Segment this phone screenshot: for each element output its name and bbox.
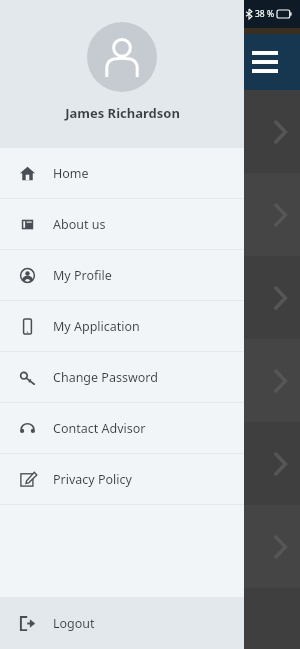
button[interactable]: Contact Advisor <box>0 403 244 453</box>
button[interactable]: My Application <box>0 301 244 351</box>
staticText: Home <box>53 165 89 182</box>
staticText: Contact Advisor <box>53 420 146 437</box>
button[interactable] <box>0 90 300 173</box>
staticText: Privacy Policy <box>53 471 132 488</box>
button[interactable]: About us <box>0 199 244 249</box>
button[interactable]: My Profile <box>0 250 244 300</box>
button[interactable]: Open navigation menu <box>252 51 278 73</box>
button[interactable]: Logout <box>0 598 244 649</box>
button[interactable]: Change Password <box>0 352 244 402</box>
staticText: James Richardson <box>65 104 180 122</box>
button[interactable] <box>0 173 300 256</box>
staticText: Logout <box>53 615 95 632</box>
staticText: My Profile <box>53 267 112 284</box>
button[interactable]: Privacy Policy <box>0 454 244 504</box>
staticText: 38 % <box>255 8 274 20</box>
button[interactable]: Home <box>0 148 244 198</box>
button[interactable] <box>0 422 300 505</box>
staticText: About us <box>53 216 106 233</box>
button[interactable] <box>0 505 300 588</box>
button[interactable] <box>0 256 300 339</box>
button[interactable] <box>0 339 300 422</box>
staticText: My Application <box>53 318 140 335</box>
staticText: Change Password <box>53 369 158 386</box>
